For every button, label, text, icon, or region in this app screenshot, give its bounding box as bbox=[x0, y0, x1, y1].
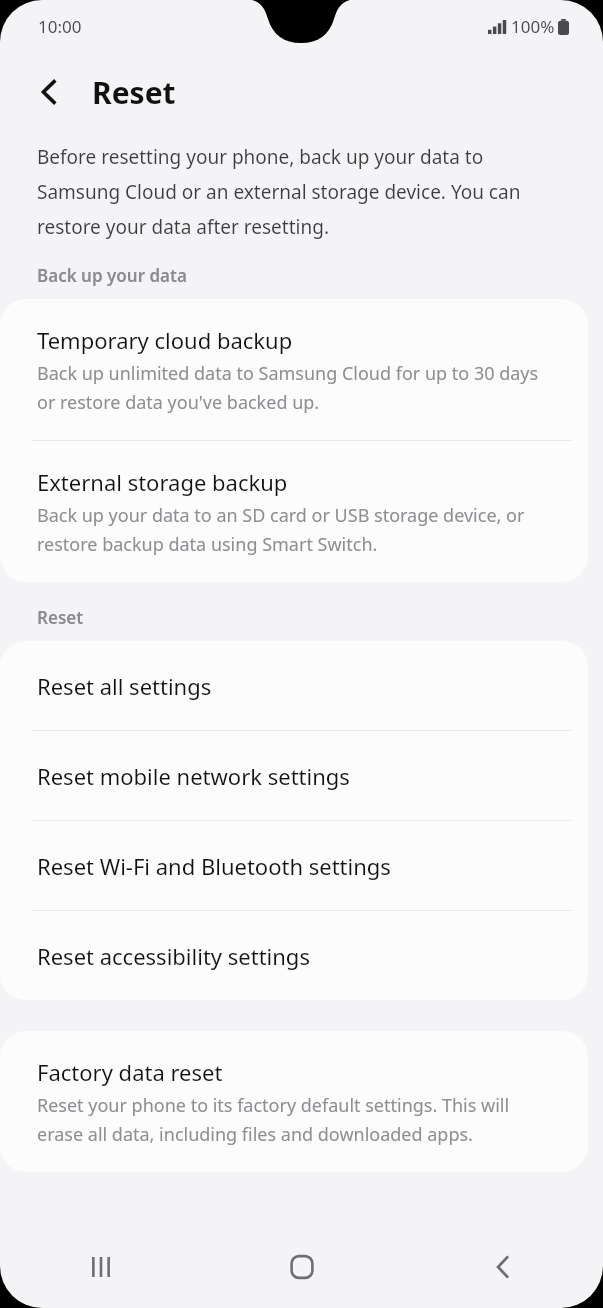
staticText: Before resetting your phone, back up you… bbox=[37, 144, 563, 240]
staticText: Temporary cloud backup bbox=[37, 325, 293, 355]
staticText: Reset mobile network settings bbox=[37, 761, 350, 791]
staticText: Reset your phone to its factory default … bbox=[37, 1093, 552, 1146]
button[interactable]: Reset accessibility settings bbox=[0, 911, 588, 1000]
button[interactable]: Temporary cloud backup bbox=[0, 299, 588, 440]
staticText: External storage backup bbox=[37, 467, 288, 497]
button[interactable]: Reset all settings bbox=[0, 641, 588, 730]
staticText: 100% bbox=[511, 15, 555, 38]
button[interactable]: Reset Wi-Fi and Bluetooth settings bbox=[0, 821, 588, 910]
staticText: Reset bbox=[92, 72, 176, 113]
staticText: Reset bbox=[37, 606, 84, 629]
staticText: Reset all settings bbox=[37, 671, 212, 701]
button[interactable]: Back bbox=[22, 65, 76, 119]
button[interactable]: Back bbox=[402, 1225, 603, 1308]
staticText: Back up your data to an SD card or USB s… bbox=[37, 503, 552, 556]
staticText: 10:00 bbox=[38, 15, 82, 38]
staticText: Factory data reset bbox=[37, 1057, 223, 1087]
staticText: Back up unlimited data to Samsung Cloud … bbox=[37, 361, 552, 414]
button[interactable]: Home bbox=[201, 1225, 402, 1308]
staticText: Back up your data bbox=[37, 264, 187, 287]
button[interactable]: External storage backup bbox=[0, 441, 588, 582]
button[interactable]: Reset mobile network settings bbox=[0, 731, 588, 820]
staticText: Reset accessibility settings bbox=[37, 941, 310, 971]
staticText: Reset Wi-Fi and Bluetooth settings bbox=[37, 851, 391, 881]
button[interactable]: Recents bbox=[0, 1225, 201, 1308]
button[interactable]: Factory data reset bbox=[0, 1031, 588, 1172]
